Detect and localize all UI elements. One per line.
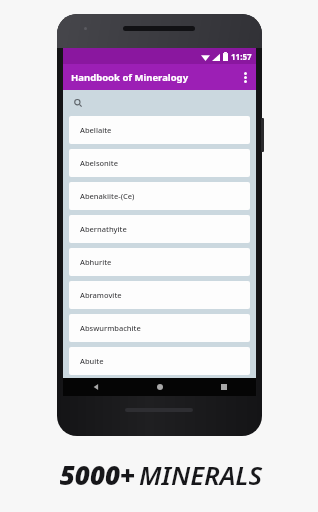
button[interactable]: Abelsonite xyxy=(69,149,250,177)
button[interactable]: Abenakiite-(Ce) xyxy=(69,182,250,210)
button[interactable]: Home xyxy=(128,378,192,396)
staticText: 11:57 xyxy=(231,51,252,62)
staticText: Abellaite xyxy=(80,125,112,135)
staticText: Abernathyite xyxy=(80,224,127,234)
staticText: Abelsonite xyxy=(80,158,119,168)
staticText: Abuite xyxy=(80,356,104,366)
button[interactable]: Abernathyite xyxy=(69,215,250,243)
button[interactable]: Abhurite xyxy=(69,248,250,276)
button[interactable]: More options xyxy=(234,66,256,88)
button[interactable]: Back xyxy=(63,378,128,396)
button[interactable]: Abswurmbachite xyxy=(69,314,250,342)
button[interactable]: Abramovite xyxy=(69,281,250,309)
staticText: Abhurite xyxy=(80,257,112,267)
button[interactable]: Recent apps xyxy=(192,378,256,396)
staticText: 5000+ xyxy=(56,457,139,492)
button[interactable]: Search xyxy=(63,90,256,116)
staticText: Abswurmbachite xyxy=(80,323,141,333)
staticText: MINERALS xyxy=(139,457,262,492)
button[interactable]: Abellaite xyxy=(69,116,250,144)
staticText: Handbook of Mineralogy xyxy=(71,71,189,84)
staticText: Abramovite xyxy=(80,290,122,300)
button[interactable]: Abuite xyxy=(69,347,250,375)
staticText: Abenakiite-(Ce) xyxy=(80,191,135,201)
